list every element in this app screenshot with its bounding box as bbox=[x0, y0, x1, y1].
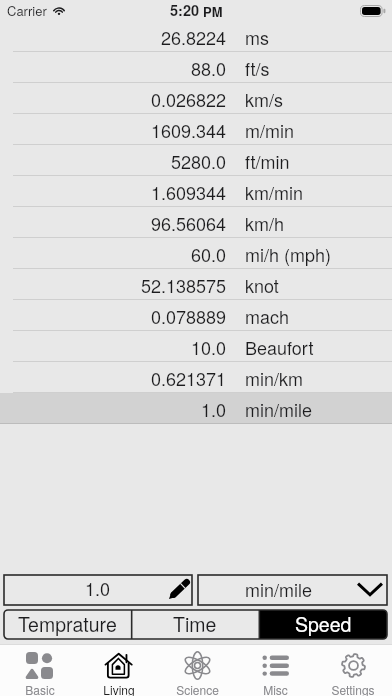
staticText: min/km bbox=[245, 365, 303, 391]
button[interactable]: 1.0 bbox=[4, 575, 192, 605]
staticText: 52.138575 bbox=[141, 272, 227, 298]
staticText: Settings bbox=[331, 681, 375, 696]
staticText: Living bbox=[103, 681, 135, 696]
button[interactable]: min/mile bbox=[198, 575, 387, 605]
other: Choose unit bbox=[357, 581, 383, 597]
staticText: km/h bbox=[245, 210, 285, 236]
staticText: 1.0 bbox=[201, 396, 227, 422]
staticText: 1609.344 bbox=[151, 117, 227, 143]
button[interactable]: 88.0 bbox=[0, 52, 392, 83]
staticText: Misc bbox=[263, 681, 288, 696]
button[interactable]: 1.609344 bbox=[0, 176, 392, 207]
button[interactable]: Misc bbox=[236, 645, 314, 696]
staticText: 88.0 bbox=[191, 55, 227, 81]
button[interactable]: 96.56064 bbox=[0, 207, 392, 238]
staticText: ft/s bbox=[245, 55, 270, 81]
staticText: 96.56064 bbox=[151, 210, 227, 236]
staticText: 10.0 bbox=[191, 334, 227, 360]
staticText: 26.8224 bbox=[161, 24, 227, 50]
button[interactable]: 0.621371 bbox=[0, 362, 392, 393]
staticText: PM bbox=[203, 2, 223, 21]
button[interactable]: Basic bbox=[0, 645, 79, 696]
staticText: min/mile bbox=[245, 576, 312, 602]
staticText: Temprature bbox=[18, 610, 117, 638]
button[interactable]: 5280.0 bbox=[0, 145, 392, 176]
staticText: min/mile bbox=[245, 396, 312, 422]
staticText: 1.609344 bbox=[151, 179, 227, 205]
staticText: 5:20 bbox=[170, 0, 200, 21]
button[interactable]: 1.0 bbox=[0, 393, 392, 424]
button[interactable]: Living bbox=[79, 645, 158, 696]
staticText: km/min bbox=[245, 179, 303, 205]
staticText: 0.078889 bbox=[151, 303, 227, 329]
staticText: 60.0 bbox=[191, 241, 227, 267]
staticText: knot bbox=[245, 272, 279, 298]
button[interactable]: 0.078889 bbox=[0, 300, 392, 331]
button[interactable]: Speed bbox=[259, 610, 387, 639]
staticText: Science bbox=[176, 681, 219, 696]
staticText: mach bbox=[245, 303, 290, 329]
staticText: ft/min bbox=[245, 148, 290, 174]
button[interactable]: Temprature bbox=[4, 610, 131, 639]
button[interactable]: 52.138575 bbox=[0, 269, 392, 300]
staticText: 1.0 bbox=[85, 575, 111, 601]
button[interactable]: Science bbox=[158, 645, 236, 696]
staticText: km/s bbox=[245, 86, 283, 112]
other: Edit value bbox=[168, 579, 189, 600]
staticText: 0.621371 bbox=[151, 365, 227, 391]
staticText: m/min bbox=[245, 117, 294, 143]
button[interactable]: Settings bbox=[314, 645, 392, 696]
staticText: Beaufort bbox=[245, 334, 314, 360]
staticText: ms bbox=[245, 24, 269, 50]
button[interactable]: 60.0 bbox=[0, 238, 392, 269]
button[interactable]: 10.0 bbox=[0, 331, 392, 362]
button[interactable]: 1609.344 bbox=[0, 114, 392, 145]
button[interactable]: 26.8224 bbox=[0, 21, 392, 52]
staticText: Carrier bbox=[7, 1, 47, 20]
staticText: 0.026822 bbox=[151, 86, 227, 112]
button[interactable]: Time bbox=[131, 610, 259, 639]
staticText: Time bbox=[173, 610, 217, 638]
button[interactable]: 0.026822 bbox=[0, 83, 392, 114]
staticText: mi/h (mph) bbox=[245, 241, 332, 267]
staticText: Basic bbox=[25, 681, 55, 696]
staticText: Speed bbox=[295, 610, 352, 638]
staticText: 5280.0 bbox=[171, 148, 227, 174]
